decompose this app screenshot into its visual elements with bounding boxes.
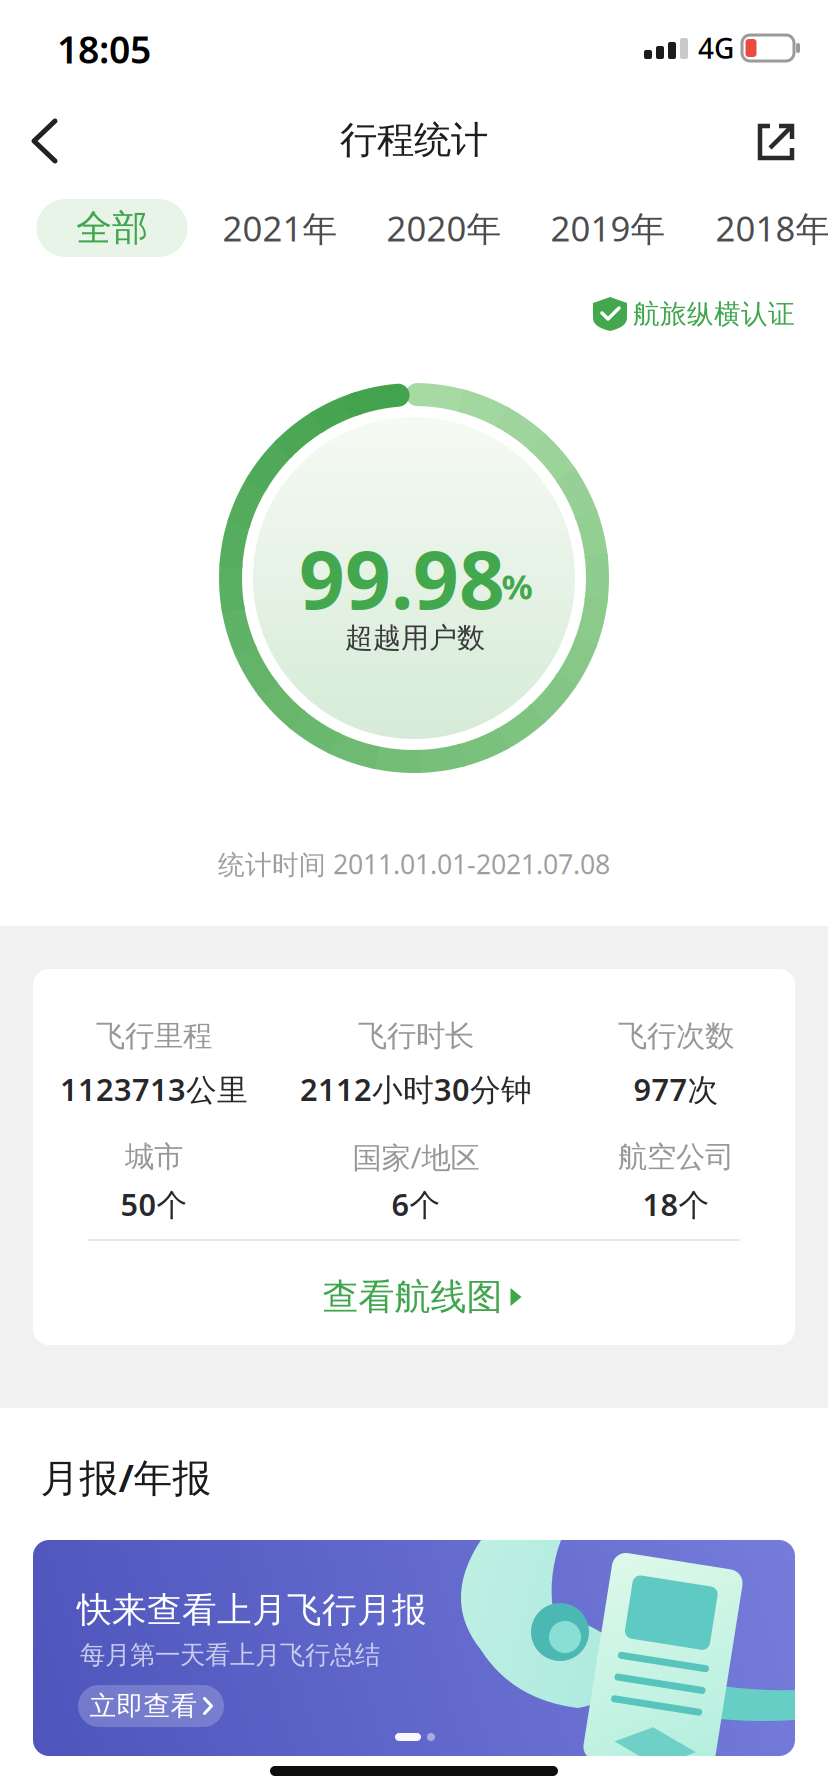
staticText: 50个 xyxy=(120,1184,187,1224)
staticText: 行程统计 xyxy=(340,117,488,163)
staticText: 飞行里程 xyxy=(96,1018,212,1054)
button[interactable] xyxy=(31,119,59,163)
staticText: 2021年 xyxy=(222,205,337,251)
staticText: 快来查看上月飞行月报 xyxy=(77,1589,427,1631)
staticText: 查看航线图 xyxy=(322,1275,502,1319)
staticText: 每月第一天看上月飞行总结 xyxy=(80,1639,380,1670)
staticText: 977次 xyxy=(633,1069,718,1109)
staticText: 月报/年报 xyxy=(40,1451,211,1503)
staticText: 立即查看 xyxy=(89,1690,197,1722)
staticText: 6个 xyxy=(391,1184,440,1224)
button[interactable]: 查看航线图 xyxy=(322,1275,521,1319)
staticText: 统计时间 2011.01.01-2021.07.08 xyxy=(218,846,610,882)
button[interactable]: 2020年 xyxy=(386,205,501,251)
staticText: 超越用户数 xyxy=(345,621,485,655)
button[interactable]: 全部 xyxy=(36,199,187,257)
staticText: 航空公司 xyxy=(618,1139,734,1175)
staticText: 18个 xyxy=(642,1184,709,1224)
button[interactable]: 2018年 xyxy=(715,205,828,251)
staticText: 1123713公里 xyxy=(60,1069,248,1109)
staticText: 18:05 xyxy=(57,24,151,74)
button[interactable]: 立即查看 xyxy=(78,1685,224,1727)
staticText: 2018年 xyxy=(715,205,828,251)
button[interactable]: 快来查看上月飞行月报 xyxy=(33,1540,795,1756)
staticText: 99.98 xyxy=(299,525,505,631)
staticText: 城市 xyxy=(125,1139,183,1175)
button[interactable]: 2019年 xyxy=(550,205,665,251)
staticText: 2020年 xyxy=(386,205,501,251)
staticText: 4G xyxy=(698,29,734,67)
staticText: 2112小时30分钟 xyxy=(300,1069,532,1109)
staticText: 2019年 xyxy=(550,205,665,251)
button[interactable]: 快来查看上月飞行月报 xyxy=(0,0,828,1792)
staticText: 飞行时长 xyxy=(358,1018,474,1054)
button[interactable] xyxy=(758,124,794,160)
staticText: 国家/地区 xyxy=(352,1137,479,1176)
staticText: 飞行次数 xyxy=(618,1018,734,1054)
staticText: % xyxy=(501,563,532,609)
button[interactable]: 2021年 xyxy=(222,205,337,251)
staticText: 航旅纵横认证 xyxy=(633,298,795,330)
staticText: 全部 xyxy=(76,206,148,250)
